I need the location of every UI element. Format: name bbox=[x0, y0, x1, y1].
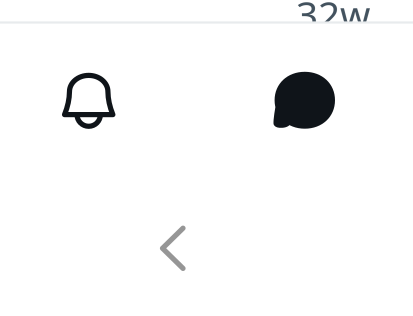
button[interactable]: Back bbox=[162, 228, 183, 268]
button[interactable]: Messages bbox=[274, 72, 335, 129]
staticText: 32w bbox=[296, 0, 370, 40]
button[interactable]: Notifications bbox=[65, 75, 113, 115]
